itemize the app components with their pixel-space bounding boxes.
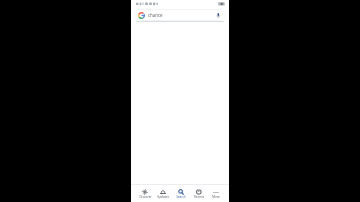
staticText: chance xyxy=(148,12,163,18)
staticText: Search xyxy=(176,195,186,199)
button[interactable]: Voice search xyxy=(215,12,222,19)
staticText: More xyxy=(212,195,220,199)
staticText: Recent xyxy=(194,195,204,199)
button[interactable]: Recent xyxy=(190,185,208,202)
staticText: Discover xyxy=(139,195,152,199)
button[interactable]: Discover xyxy=(136,185,154,202)
button[interactable]: Search xyxy=(172,185,190,202)
staticText: Updates xyxy=(157,195,169,199)
button[interactable]: chance xyxy=(134,9,226,21)
button[interactable]: More xyxy=(208,185,224,202)
button[interactable]: Updates xyxy=(154,185,172,202)
